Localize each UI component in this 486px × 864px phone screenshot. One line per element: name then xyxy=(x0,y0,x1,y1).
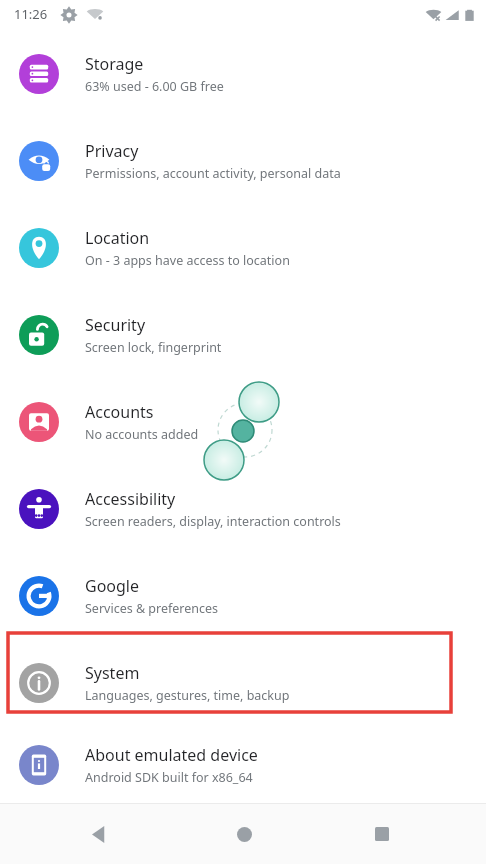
staticText: Location xyxy=(85,227,150,249)
staticText: Screen lock, fingerprint xyxy=(85,339,222,356)
button[interactable]: Home xyxy=(222,812,266,856)
staticText: Storage xyxy=(85,53,144,75)
button[interactable]: System xyxy=(0,639,486,726)
staticText: Privacy xyxy=(85,140,139,162)
button[interactable]: Location xyxy=(0,204,486,291)
staticText: Languages, gestures, time, backup xyxy=(85,687,290,704)
button[interactable]: Security xyxy=(0,291,486,378)
staticText: Services & preferences xyxy=(85,600,219,617)
staticText: Google xyxy=(85,575,140,597)
staticText: 11:26 xyxy=(14,5,48,23)
staticText: Accounts xyxy=(85,401,154,423)
staticText: 63% used - 6.00 GB free xyxy=(85,78,224,95)
staticText: Security xyxy=(85,314,146,336)
button[interactable]: About emulated device xyxy=(0,726,486,803)
staticText: On - 3 apps have access to location xyxy=(85,252,290,269)
staticText: Accessibility xyxy=(85,488,176,510)
staticText: Screen readers, display, interaction con… xyxy=(85,513,341,530)
staticText: Permissions, account activity, personal … xyxy=(85,165,341,182)
button[interactable]: Google xyxy=(0,552,486,639)
button[interactable]: Accounts xyxy=(0,378,486,465)
button[interactable]: Accessibility xyxy=(0,465,486,552)
button[interactable]: Privacy xyxy=(0,117,486,204)
button[interactable]: Storage xyxy=(0,30,486,117)
staticText: No accounts added xyxy=(85,426,199,443)
staticText: System xyxy=(85,662,140,684)
staticText: About emulated device xyxy=(85,744,258,766)
button[interactable]: Recent apps xyxy=(360,812,404,856)
button[interactable]: Back xyxy=(78,812,122,856)
staticText: Android SDK built for x86_64 xyxy=(85,769,253,786)
